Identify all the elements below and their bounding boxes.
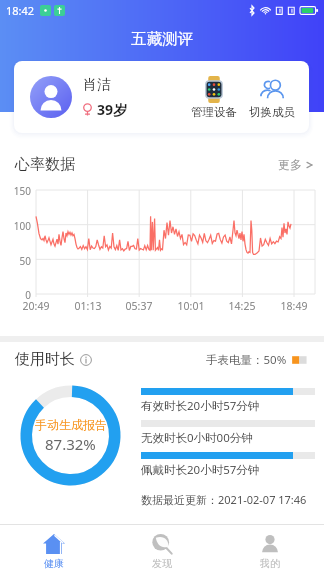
button[interactable]: 我的 (216, 525, 324, 576)
staticText: 100 (0, 219, 31, 233)
staticText: 50 (0, 254, 31, 268)
staticText: 87.32% (45, 434, 96, 454)
staticText: 管理设备 (191, 105, 237, 119)
staticText: 无效时长0小时00分钟 (141, 430, 253, 446)
staticText: 18:42 (6, 3, 35, 18)
staticText: 切换成员 (249, 105, 295, 119)
button[interactable]: 健康 (0, 525, 108, 576)
staticText: 10:01 (173, 299, 209, 313)
staticText: 健康 (44, 557, 64, 570)
staticText: 数据最近更新：2021-02-07 17:46 (141, 492, 307, 507)
staticText: 01:13 (70, 299, 106, 313)
staticText: 手表电量：50% (206, 352, 287, 368)
button[interactable]: 管理设备 (191, 76, 237, 119)
staticText: 使用时长 (15, 350, 75, 369)
staticText: 手动生成报告 (35, 417, 107, 432)
staticText: 肖洁 (83, 76, 111, 94)
staticText: 39岁 (97, 100, 128, 119)
button[interactable]: 发现 (108, 525, 216, 576)
staticText: 我的 (260, 557, 280, 570)
staticText: 发现 (152, 557, 172, 570)
staticText: 18:49 (276, 299, 312, 313)
staticText: 20:49 (18, 299, 54, 313)
staticText: 14:25 (224, 299, 260, 313)
button[interactable]: 切换成员 (249, 76, 295, 119)
staticText: 05:37 (121, 299, 157, 313)
staticText: 心率数据 (15, 155, 75, 174)
staticText: 150 (0, 184, 31, 198)
staticText: 五藏测评 (0, 29, 324, 49)
staticText: 佩戴时长20小时57分钟 (141, 462, 260, 478)
staticText: 有效时长20小时57分钟 (141, 398, 260, 414)
button[interactable]: 更多 (278, 154, 313, 175)
staticText: 0 (0, 288, 31, 302)
staticText: 更多 (278, 157, 302, 172)
